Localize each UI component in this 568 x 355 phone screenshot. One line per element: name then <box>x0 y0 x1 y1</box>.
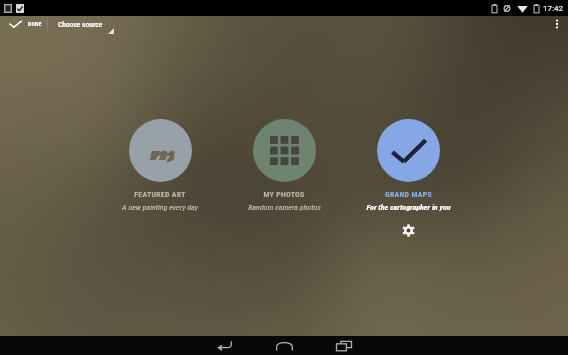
staticText: MY PHOTOS <box>263 190 305 199</box>
staticText: A new painting every day <box>122 203 198 212</box>
button[interactable]: m <box>98 119 222 212</box>
button[interactable]: Recent apps <box>324 336 364 355</box>
button[interactable]: Settings <box>397 219 419 241</box>
staticText: FEATURED ART <box>134 190 186 199</box>
button[interactable]: GRAND MAPS <box>346 119 470 241</box>
staticText: For the cartographer in you <box>366 203 451 212</box>
button[interactable]: DONE <box>0 14 47 34</box>
button[interactable]: Back <box>204 336 244 355</box>
button[interactable]: Choose source <box>48 14 115 34</box>
button[interactable]: MY PHOTOS <box>222 119 346 212</box>
staticText: m <box>145 138 174 160</box>
button[interactable]: Home <box>264 336 304 355</box>
staticText: Random camera photos <box>248 203 321 212</box>
staticText: Choose source <box>58 20 103 29</box>
staticText: 17:42 <box>543 4 563 13</box>
button[interactable]: More options <box>546 14 568 34</box>
staticText: DONE <box>28 21 42 27</box>
staticText: GRAND MAPS <box>385 190 432 199</box>
